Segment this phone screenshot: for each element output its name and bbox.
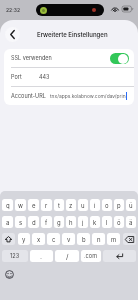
staticText: o (105, 202, 109, 209)
staticText: r (45, 202, 48, 209)
button[interactable]: s (15, 216, 26, 228)
staticText: u (81, 202, 85, 209)
button[interactable]: u (78, 199, 88, 211)
staticText: / (66, 252, 69, 260)
staticText: tnx/apps.kolabnow.com/dav/prin (50, 93, 126, 99)
staticText: a (6, 219, 10, 226)
staticText: p (117, 202, 121, 209)
staticText: j (82, 219, 84, 226)
staticText: x (37, 236, 41, 243)
button[interactable]: w (15, 199, 26, 211)
staticText: i (94, 202, 96, 209)
button[interactable]: b (77, 233, 90, 245)
staticText: s (19, 219, 23, 226)
button[interactable]: . (30, 250, 53, 262)
button[interactable]: 123 (2, 250, 28, 262)
button[interactable]: o (102, 199, 112, 211)
button[interactable]: v (62, 233, 75, 245)
button[interactable]: q (2, 199, 13, 211)
button[interactable]: ü (126, 199, 136, 211)
button[interactable]: e (28, 199, 39, 211)
button[interactable]: SSL verwenden (110, 53, 129, 64)
staticText: b (82, 236, 86, 243)
staticText: z (69, 202, 73, 209)
button[interactable]: t (54, 199, 64, 211)
staticText: q (6, 202, 10, 209)
button[interactable]: Löschen (123, 233, 136, 245)
button[interactable]: m (107, 233, 120, 245)
button[interactable]: l (102, 216, 112, 228)
button[interactable]: SSL verwenden (4, 49, 134, 67)
staticText: .com (84, 253, 98, 260)
staticText: c (52, 236, 56, 243)
staticText: 123 (10, 253, 20, 260)
staticText: n (97, 236, 101, 243)
staticText: w (18, 202, 23, 209)
button[interactable]: g (54, 216, 64, 228)
staticText: ü (129, 202, 133, 209)
staticText: Port (11, 74, 22, 81)
button[interactable]: x (32, 233, 45, 245)
button[interactable]: p (114, 199, 124, 211)
button[interactable]: h (66, 216, 76, 228)
staticText: m (111, 236, 117, 243)
staticText: SSL verwenden (11, 55, 52, 62)
button[interactable]: k (90, 216, 100, 228)
staticText: e (32, 202, 36, 209)
button[interactable]: ä (126, 216, 136, 228)
button[interactable]: Eingabe (103, 250, 136, 262)
staticText: k (93, 219, 97, 226)
staticText: f (45, 219, 48, 226)
staticText: Account-URL (11, 93, 46, 100)
button[interactable]: r (41, 199, 52, 211)
staticText: g (57, 219, 61, 226)
staticText: ö (117, 219, 121, 226)
button[interactable]: .com (81, 250, 101, 262)
button[interactable]: z (66, 199, 76, 211)
button[interactable]: i (90, 199, 100, 211)
staticText: ä (129, 219, 133, 226)
staticText: 443 (39, 74, 50, 81)
button[interactable]: Account-URL (4, 87, 134, 105)
button[interactable]: / (55, 250, 79, 262)
staticText: t (58, 202, 60, 209)
button[interactable]: d (28, 216, 39, 228)
button[interactable]: n (92, 233, 105, 245)
staticText: 22:32 (6, 7, 21, 13)
button[interactable]: c (47, 233, 60, 245)
staticText: y (22, 236, 26, 243)
button[interactable]: Emoji (4, 269, 15, 280)
button[interactable]: a (2, 216, 13, 228)
staticText: l (106, 219, 108, 226)
staticText: Erweiterte Einstellungen (37, 31, 108, 38)
button[interactable]: Umschalt (2, 233, 15, 245)
button[interactable]: Port (4, 68, 134, 86)
staticText: d (32, 219, 36, 226)
button[interactable]: y (18, 233, 30, 245)
button[interactable]: f (41, 216, 52, 228)
staticText: . (40, 252, 43, 260)
button[interactable]: Zurück (5, 27, 20, 42)
staticText: h (69, 219, 73, 226)
staticText: v (67, 236, 71, 243)
button[interactable]: ö (114, 216, 124, 228)
button[interactable]: j (78, 216, 88, 228)
